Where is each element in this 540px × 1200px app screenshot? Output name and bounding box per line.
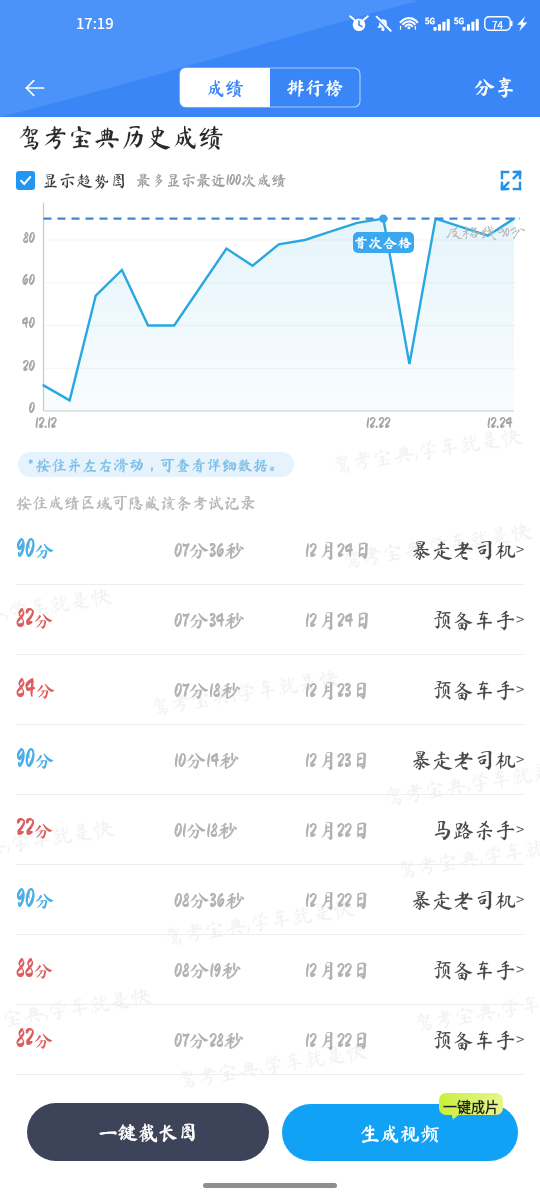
staticText: 驾考宝典,学车就是快 xyxy=(329,425,523,476)
button[interactable]: Fullscreen xyxy=(499,169,523,191)
staticText: 马路杀手 xyxy=(432,820,516,841)
staticText: 分 xyxy=(34,961,54,980)
staticText: 驾考宝典,学车就是快 xyxy=(0,817,115,868)
staticText: 90 xyxy=(16,537,35,561)
staticText: 暴走老司机 xyxy=(411,750,516,771)
staticText: 01分18秒 xyxy=(174,820,238,840)
staticText: 驾考宝典,学车就是快 xyxy=(394,830,540,881)
staticText: 12月23日 xyxy=(305,750,372,770)
staticText: > xyxy=(516,1028,525,1050)
staticText: 80 xyxy=(2,230,35,246)
staticText: 5G xyxy=(425,15,435,27)
staticText: 12.12 xyxy=(35,415,57,431)
staticText: 0 xyxy=(2,400,35,416)
staticText: 12.22 xyxy=(366,415,391,431)
staticText: 90 xyxy=(16,887,35,911)
staticText: > xyxy=(516,958,525,980)
staticText: > xyxy=(516,888,525,910)
staticText: 暴走老司机 xyxy=(411,540,516,561)
staticText: 74 xyxy=(492,17,504,31)
staticText: > xyxy=(516,538,525,560)
staticText: 一键成片 xyxy=(439,1096,503,1116)
button[interactable]: 90 xyxy=(0,865,540,935)
staticText: 22 xyxy=(16,817,34,841)
staticText: 12月24日 xyxy=(305,540,374,560)
staticText: 分享 xyxy=(474,77,516,98)
button[interactable]: * 按住并左右滑动，可查看详细数据。 xyxy=(18,452,294,477)
button[interactable]: 82 xyxy=(0,1005,540,1075)
staticText: 60 xyxy=(2,272,35,288)
staticText: 排行榜 xyxy=(286,78,344,97)
staticText: 驾考宝典,学车就是快 xyxy=(0,985,153,1036)
staticText: 分 xyxy=(35,751,55,770)
staticText: 及格线90分 xyxy=(446,223,526,240)
staticText: 5G xyxy=(454,15,464,27)
staticText: 暴走老司机 xyxy=(411,890,516,911)
button[interactable]: 排行榜 xyxy=(270,68,360,107)
button[interactable]: 生成视频 xyxy=(282,1104,518,1161)
staticText: 显示趋势图 xyxy=(42,172,127,189)
staticText: 07分28秒 xyxy=(174,1030,244,1050)
button[interactable]: 84 xyxy=(0,655,540,725)
staticText: 07分34秒 xyxy=(174,610,245,630)
staticText: 12月22日 xyxy=(305,1030,372,1050)
button[interactable]: 82 xyxy=(0,585,540,655)
staticText: 驾考宝典,学车就是快 xyxy=(381,757,540,808)
staticText: 分 xyxy=(35,891,55,910)
staticText: 分 xyxy=(34,1031,54,1050)
staticText: 分 xyxy=(36,681,56,700)
staticText: 成绩 xyxy=(206,78,245,97)
staticText: 12月23日 xyxy=(305,680,372,700)
staticText: 84 xyxy=(16,677,36,701)
button[interactable]: 90 xyxy=(0,515,540,585)
staticText: 82 xyxy=(16,1027,34,1051)
staticText: * 按住并左右滑动，可查看详细数据。 xyxy=(28,457,284,473)
staticText: 08分19秒 xyxy=(174,960,241,980)
staticText: 驾考宝典,学车就是快 xyxy=(161,897,355,948)
staticText: 按住成绩区域可隐藏该条考试记录 xyxy=(16,495,257,511)
button[interactable]: 成绩 xyxy=(180,68,270,107)
staticText: 驾考宝典历史成绩 xyxy=(16,124,225,150)
staticText: 驾考宝典,学车就是快 xyxy=(411,983,540,1034)
staticText: 驾考宝典,学车就是快 xyxy=(147,667,341,718)
staticText: 82 xyxy=(16,607,34,631)
staticText: 驾考宝典,学车就是快 xyxy=(0,585,113,636)
button[interactable]: 分享 xyxy=(470,71,520,104)
staticText: 08分36秒 xyxy=(174,890,245,910)
staticText: > xyxy=(516,748,525,770)
staticText: 12月24日 xyxy=(305,610,374,630)
staticText: 预备车手 xyxy=(432,960,516,981)
staticText: 12.24 xyxy=(487,415,513,431)
staticText: 预备车手 xyxy=(432,680,516,701)
staticText: 88 xyxy=(16,957,34,981)
staticText: 12月22日 xyxy=(305,820,372,840)
staticText: 10分14秒 xyxy=(174,750,240,770)
button[interactable]: 90 xyxy=(0,725,540,795)
button[interactable]: 88 xyxy=(0,935,540,1005)
staticText: 07分36秒 xyxy=(174,540,245,560)
staticText: > xyxy=(516,818,525,840)
staticText: 07分18秒 xyxy=(174,680,241,700)
staticText: > xyxy=(516,678,525,700)
staticText: 20 xyxy=(2,358,35,374)
staticText: 分 xyxy=(34,821,54,840)
staticText: 驾考宝典,学车就是快 xyxy=(174,1040,368,1091)
staticText: 预备车手 xyxy=(432,1030,516,1051)
staticText: 12月22日 xyxy=(305,960,372,980)
button[interactable]: 一键截长图 xyxy=(27,1103,269,1161)
staticText: 生成视频 xyxy=(360,1123,440,1143)
staticText: 预备车手 xyxy=(432,610,516,631)
button[interactable]: 显示趋势图 xyxy=(16,171,127,190)
staticText: 12月22日 xyxy=(305,890,372,910)
staticText: 最多显示最近100次成绩 xyxy=(136,173,287,188)
staticText: 90 xyxy=(16,747,35,771)
staticText: 一键截长图 xyxy=(98,1122,198,1142)
staticText: 分 xyxy=(35,541,55,560)
staticText: 17:19 xyxy=(76,12,114,34)
staticText: 驾考宝典,学车就是快 xyxy=(339,520,533,571)
staticText: 首次合格 xyxy=(354,236,413,250)
button[interactable]: Back xyxy=(13,66,57,110)
staticText: > xyxy=(516,608,525,630)
button[interactable]: 22 xyxy=(0,795,540,865)
staticText: 40 xyxy=(2,315,35,331)
